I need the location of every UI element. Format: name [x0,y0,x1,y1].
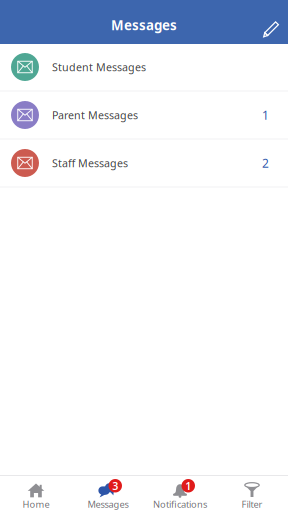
staticText: Messages [87,498,128,510]
staticText: Filter [241,498,262,510]
button[interactable]: Home [0,476,72,512]
button[interactable]: 1 [144,476,216,512]
button[interactable]: Staff Messages [0,140,288,188]
button[interactable]: Filter [216,476,288,512]
staticText: Messages [111,16,177,34]
button[interactable]: Parent Messages [0,92,288,140]
button[interactable]: Student Messages [0,44,288,92]
staticText: Student Messages [52,60,146,74]
staticText: Home [22,498,49,510]
button[interactable]: 3 [72,476,144,512]
staticText: 1 [262,107,269,123]
staticText: 1 [185,479,191,493]
staticText: Parent Messages [52,108,138,122]
staticText: Staff Messages [52,156,128,170]
staticText: 3 [112,479,118,493]
staticText: Notifications [153,498,207,510]
button[interactable]: Compose [263,21,288,38]
staticText: 2 [262,155,269,171]
